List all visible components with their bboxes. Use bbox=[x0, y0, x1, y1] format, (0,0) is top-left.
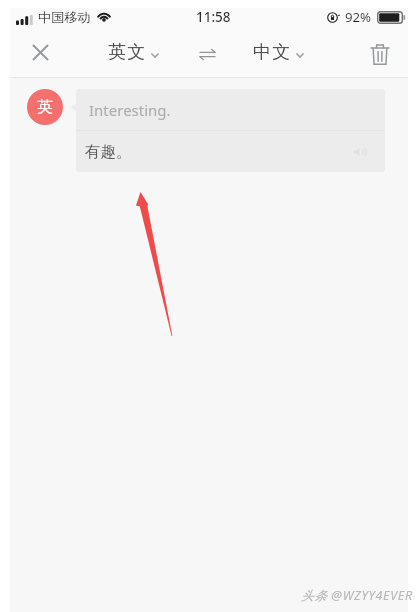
button[interactable]: Close bbox=[18, 30, 62, 74]
staticText: 92% bbox=[345, 8, 372, 26]
staticText: Interesting. bbox=[89, 100, 171, 120]
button[interactable]: Swap languages bbox=[191, 38, 223, 70]
staticText: 英文 bbox=[108, 41, 147, 64]
button[interactable]: 英 bbox=[27, 89, 63, 125]
staticText: 11:58 bbox=[196, 8, 231, 26]
staticText: 英 bbox=[37, 97, 53, 117]
button[interactable]: 中文 bbox=[247, 35, 310, 70]
staticText: 中国移动 bbox=[38, 9, 91, 26]
staticText: 有趣。 bbox=[85, 142, 132, 162]
button[interactable]: Delete bbox=[358, 32, 402, 76]
staticText: 中文 bbox=[253, 41, 292, 64]
button[interactable]: Interesting. bbox=[76, 89, 385, 172]
staticText: 头条 @WZYY4EVER bbox=[301, 587, 413, 604]
button[interactable]: 英文 bbox=[102, 35, 165, 70]
